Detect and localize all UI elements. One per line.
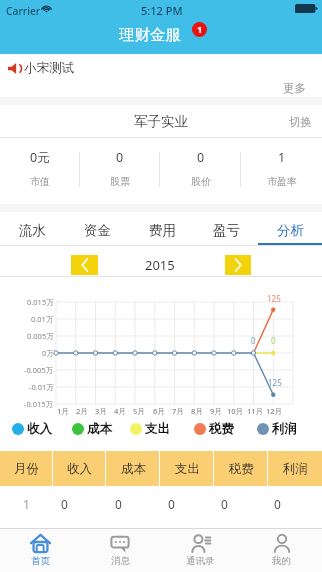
staticText: 0 bbox=[221, 496, 228, 512]
staticText: 通讯录 bbox=[186, 555, 215, 567]
staticText: 2月 bbox=[76, 406, 88, 416]
button[interactable]: 分析 bbox=[258, 212, 322, 246]
staticText: 税费 bbox=[229, 461, 254, 477]
staticText: -0.005万 bbox=[24, 365, 54, 375]
staticText: 5月 bbox=[133, 406, 145, 416]
staticText: 0 bbox=[116, 149, 124, 166]
staticText: 0.015万 bbox=[27, 297, 54, 307]
staticText: 0.01万 bbox=[31, 314, 54, 324]
staticText: 125 bbox=[267, 293, 281, 304]
staticText: 股票 bbox=[110, 175, 130, 188]
staticText: -0.01万 bbox=[29, 382, 54, 392]
staticText: 收入 bbox=[27, 421, 52, 437]
button[interactable]: 收入 bbox=[12, 421, 52, 437]
staticText: 市盈率 bbox=[267, 175, 297, 188]
staticText: 0 bbox=[61, 496, 68, 512]
staticText: 0 bbox=[271, 335, 276, 346]
staticText: 7月 bbox=[172, 406, 184, 416]
staticText: 股价 bbox=[191, 175, 211, 188]
staticText: 1 bbox=[278, 149, 286, 166]
staticText: 0 bbox=[197, 149, 205, 166]
staticText: 4月 bbox=[114, 406, 126, 416]
staticText: 1 bbox=[23, 496, 30, 512]
staticText: 6月 bbox=[153, 406, 165, 416]
staticText: 8月 bbox=[191, 406, 203, 416]
staticText: 0元 bbox=[30, 149, 50, 166]
button[interactable]: 通讯录 bbox=[160, 529, 241, 572]
staticText: 2015 bbox=[145, 256, 175, 274]
staticText: 流水 bbox=[19, 222, 46, 239]
staticText: 盈亏 bbox=[213, 222, 240, 239]
staticText: Carrier bbox=[6, 4, 41, 18]
staticText: 军子实业 bbox=[134, 113, 188, 130]
staticText: 支出 bbox=[175, 461, 200, 477]
staticText: 收入 bbox=[67, 461, 92, 477]
staticText: 0 bbox=[168, 496, 175, 512]
staticText: 月份 bbox=[14, 461, 39, 477]
staticText: 10月 bbox=[227, 406, 244, 416]
button[interactable]: 消息 bbox=[80, 529, 160, 572]
staticText: 切换 bbox=[289, 115, 312, 129]
staticText: 分析 bbox=[277, 222, 304, 239]
staticText: 12月 bbox=[266, 406, 283, 416]
button[interactable]: 税费 bbox=[194, 421, 234, 437]
staticText: 成本 bbox=[121, 461, 146, 477]
staticText: 0 bbox=[251, 335, 256, 346]
button[interactable]: 费用 bbox=[130, 212, 194, 246]
staticText: 利润 bbox=[272, 421, 297, 437]
staticText: 9月 bbox=[210, 406, 222, 416]
staticText: 更多 bbox=[283, 81, 306, 95]
button[interactable]: 成本 bbox=[72, 421, 112, 437]
staticText: 3月 bbox=[95, 406, 107, 416]
staticText: 利润 bbox=[283, 461, 308, 477]
staticText: 费用 bbox=[149, 222, 176, 239]
button[interactable]: 首页 bbox=[0, 529, 80, 572]
staticText: 小宋测试 bbox=[24, 60, 74, 76]
staticText: 我的 bbox=[272, 555, 291, 567]
staticText: 支出 bbox=[145, 421, 170, 437]
staticText: 成本 bbox=[87, 421, 112, 437]
staticText: 1月 bbox=[57, 406, 69, 416]
staticText: 消息 bbox=[111, 555, 130, 567]
staticText: 税费 bbox=[209, 421, 234, 437]
staticText: 0.005万 bbox=[27, 331, 54, 341]
staticText: 首页 bbox=[31, 555, 50, 567]
button[interactable]: 更多 bbox=[283, 81, 306, 95]
button[interactable]: 我的 bbox=[241, 529, 322, 572]
button[interactable]: 切换 bbox=[289, 115, 312, 129]
button[interactable]: 盈亏 bbox=[194, 212, 258, 246]
staticText: 市值 bbox=[30, 175, 50, 188]
button[interactable]: Previous year bbox=[71, 255, 98, 275]
staticText: 资金 bbox=[84, 222, 111, 239]
staticText: -0.015万 bbox=[24, 399, 54, 409]
button[interactable]: 利润 bbox=[257, 421, 297, 437]
button[interactable]: 小宋测试 bbox=[8, 60, 74, 76]
staticText: 0万 bbox=[42, 348, 54, 358]
staticText: 理财金服 bbox=[119, 25, 181, 45]
staticText: 5:12 PM bbox=[141, 3, 183, 18]
button[interactable]: Next year bbox=[225, 255, 251, 275]
staticText: 1 bbox=[197, 23, 203, 36]
button[interactable]: 资金 bbox=[65, 212, 130, 246]
button[interactable]: 流水 bbox=[0, 212, 65, 246]
staticText: 125 bbox=[268, 377, 282, 388]
staticText: 0 bbox=[115, 496, 122, 512]
button[interactable]: 支出 bbox=[130, 421, 170, 437]
staticText: 0 bbox=[274, 496, 281, 512]
staticText: 11月 bbox=[247, 406, 264, 416]
